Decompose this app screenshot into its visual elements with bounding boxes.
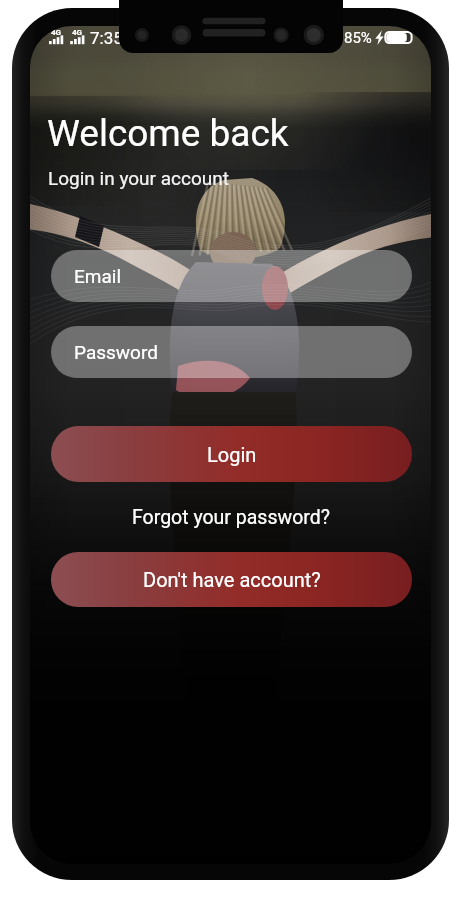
staticText: Password <box>74 341 158 363</box>
button[interactable]: Forgot your password? <box>30 499 431 535</box>
staticText: Forgot your password? <box>132 506 330 529</box>
staticText: 85% <box>344 29 372 47</box>
staticText: Email <box>74 265 122 287</box>
button[interactable]: Don't have account? <box>51 552 412 607</box>
staticText: Welcome back <box>47 112 289 155</box>
staticText: Login <box>207 443 257 466</box>
staticText: Login in your account <box>48 167 229 189</box>
button[interactable]: Email <box>51 250 412 302</box>
staticText: 7:35 <box>90 28 123 48</box>
staticText: Don't have account? <box>143 568 321 591</box>
button[interactable]: Login <box>51 426 412 482</box>
button[interactable]: Password <box>51 326 412 378</box>
staticText: 4G <box>72 28 83 37</box>
staticText: 4G <box>51 28 62 37</box>
